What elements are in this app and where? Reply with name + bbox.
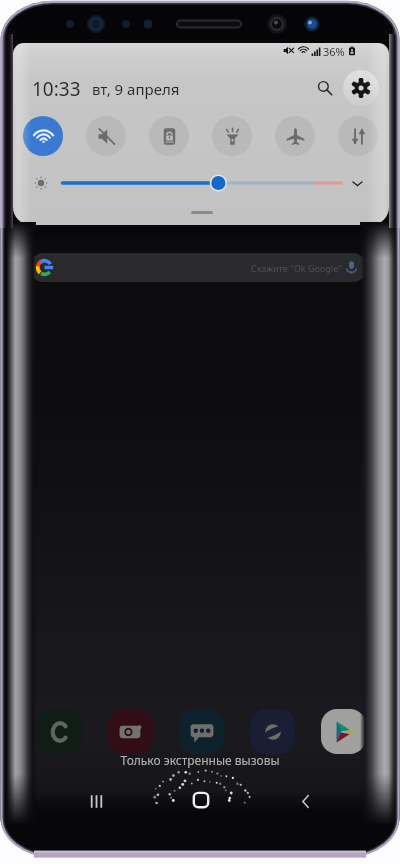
button[interactable]: App icon (37, 709, 82, 754)
button[interactable]: Airplane mode (275, 116, 315, 156)
button[interactable]: Brightness slider (61, 174, 343, 192)
button[interactable]: Search with Google (29, 253, 367, 282)
button[interactable]: App icon (321, 709, 366, 754)
button[interactable]: Expand panel (345, 171, 369, 195)
button[interactable]: Search (310, 73, 340, 103)
staticText: 36% (323, 44, 345, 57)
button[interactable]: Wi-Fi (23, 116, 63, 156)
button[interactable]: Flashlight (212, 116, 252, 156)
staticText: Скажите "Ok Google" (251, 262, 342, 274)
button[interactable]: Screen lock (149, 116, 189, 156)
button[interactable]: App icon (250, 709, 295, 754)
button[interactable]: Recent apps (78, 783, 114, 819)
button[interactable]: App icon (108, 709, 153, 754)
staticText: вт, 9 апреля (92, 79, 180, 99)
button[interactable]: Sound off (86, 116, 126, 156)
button[interactable]: Home (160, 766, 242, 848)
staticText: 10:33 (32, 76, 81, 102)
button[interactable]: Mobile data (338, 116, 378, 156)
button[interactable]: Settings (343, 70, 379, 106)
button[interactable]: Brightness (30, 172, 52, 194)
button[interactable]: Back (288, 783, 324, 819)
button[interactable]: App icon (179, 709, 224, 754)
staticText: Только экстренные вызовы (0, 752, 400, 768)
